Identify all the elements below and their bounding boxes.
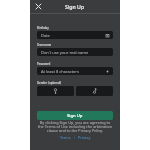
button[interactable]: Close bbox=[33, 1, 44, 12]
staticText: Username bbox=[37, 43, 52, 47]
button[interactable]: Terms bbox=[60, 135, 71, 140]
staticText: At least 8 characters bbox=[41, 69, 79, 74]
staticText: Don't use your real name bbox=[41, 50, 89, 55]
staticText: Gender (optional) bbox=[37, 81, 62, 85]
button[interactable]: Sign Up bbox=[37, 111, 113, 120]
button[interactable]: Don't use your real name bbox=[37, 48, 113, 56]
button[interactable]: Privacy bbox=[78, 135, 91, 140]
staticText: Sign Up bbox=[67, 113, 83, 119]
staticText: • bbox=[71, 135, 78, 140]
button[interactable]: At least 8 characters bbox=[37, 67, 113, 75]
button[interactable]: Female bbox=[76, 86, 113, 96]
button[interactable]: Male bbox=[37, 86, 74, 96]
button[interactable]: Date bbox=[37, 31, 113, 39]
staticText: By clicking Sign Up, you are agreeing to… bbox=[37, 120, 113, 133]
staticText: Date bbox=[41, 33, 50, 38]
staticText: Password bbox=[37, 62, 51, 66]
staticText: Birthday bbox=[37, 26, 49, 30]
staticText: Sign Up bbox=[65, 3, 85, 10]
